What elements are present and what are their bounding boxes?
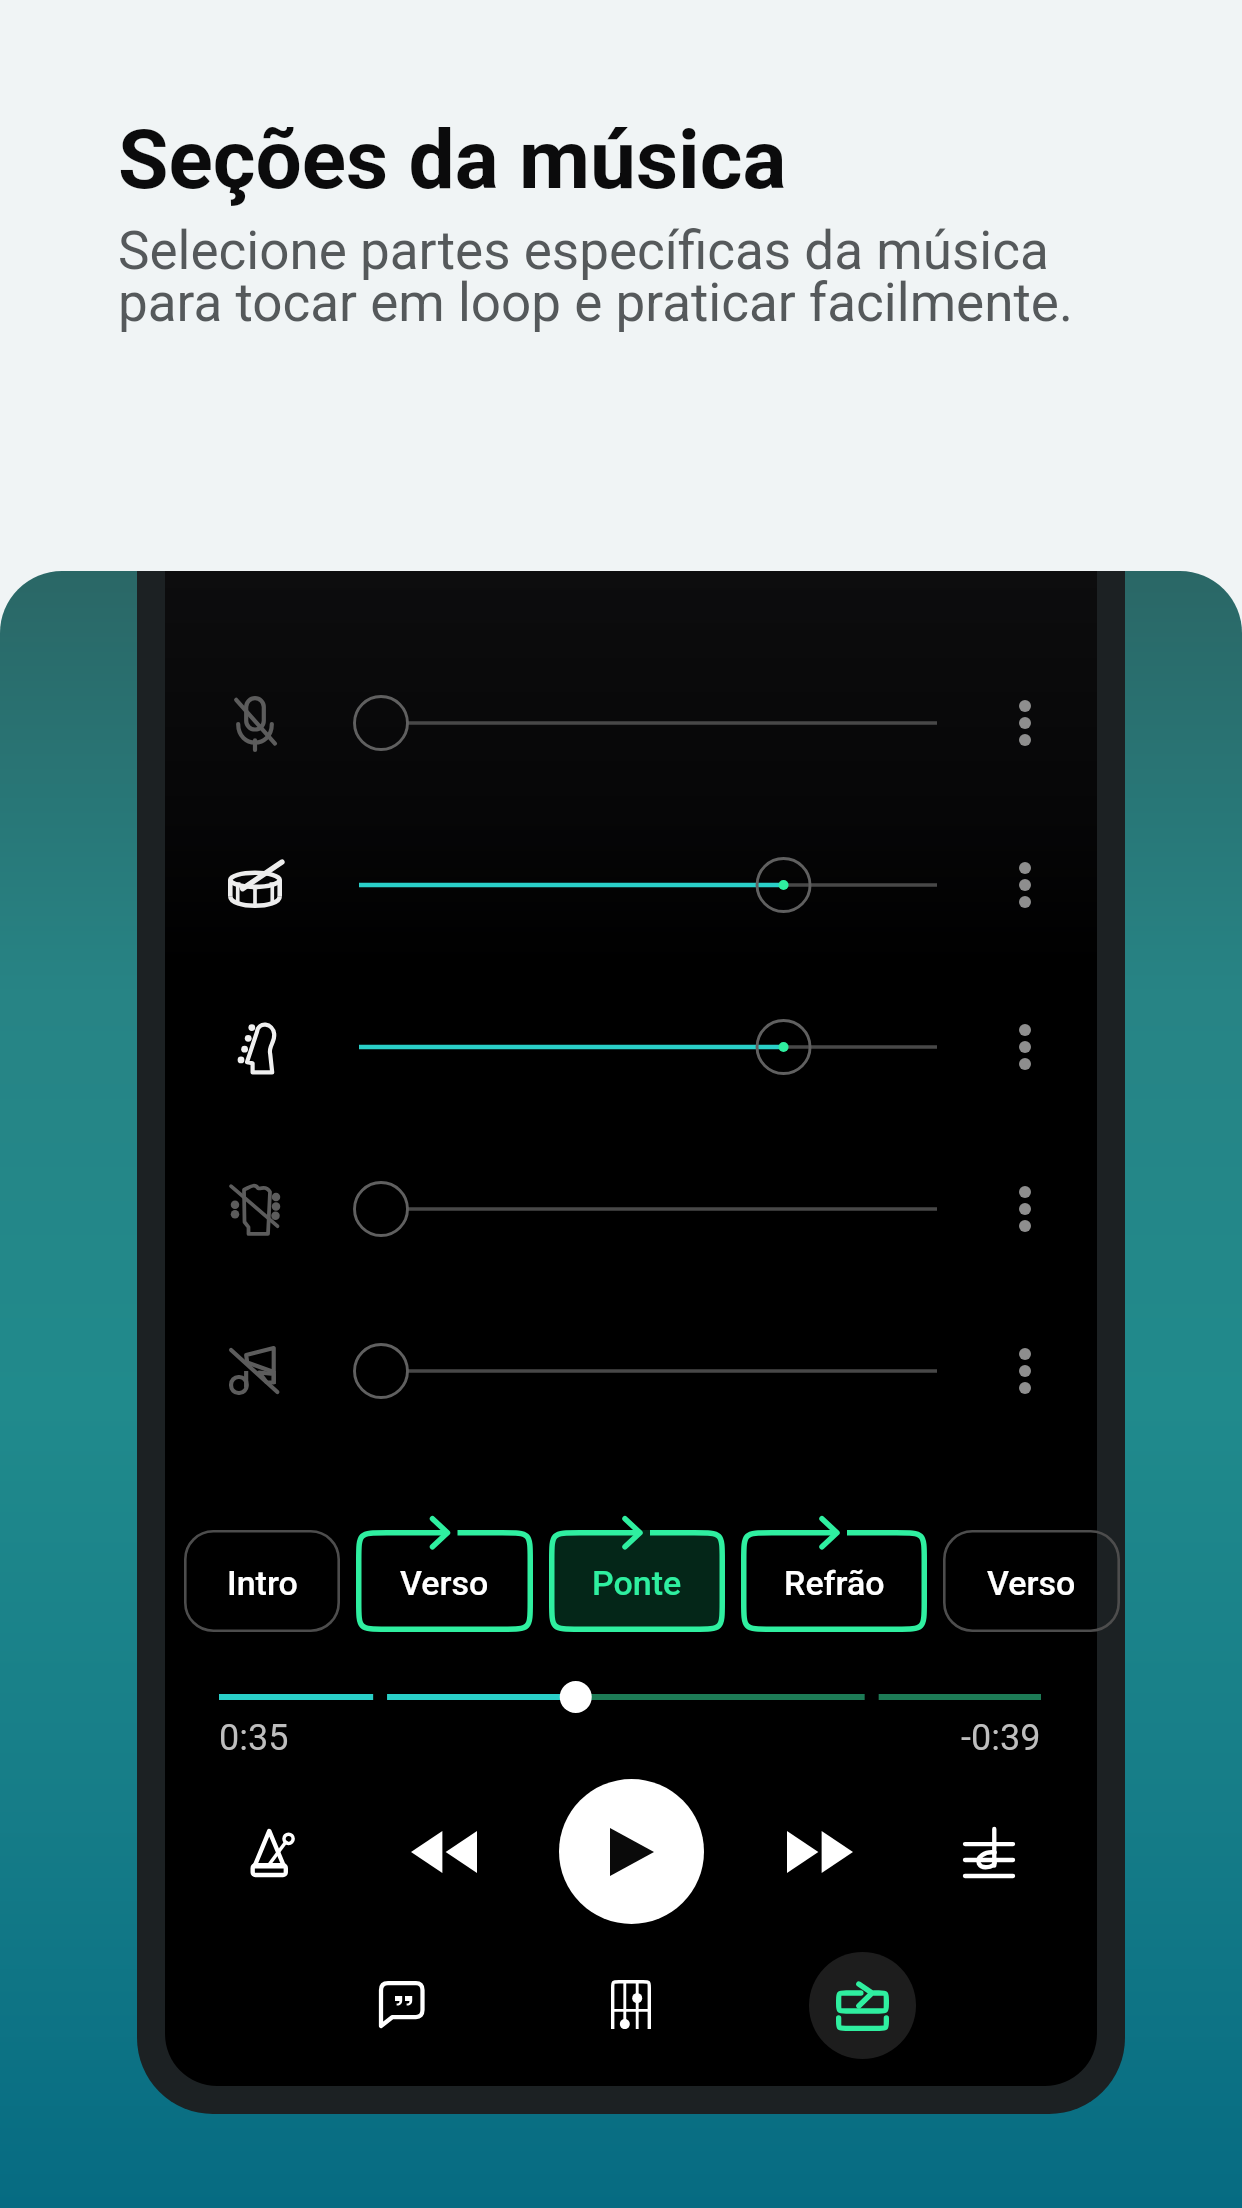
button[interactable]: Vocals	[201, 669, 309, 777]
button[interactable]: Bass	[201, 993, 309, 1101]
button[interactable]: More options	[985, 1326, 1065, 1416]
button[interactable]: Lyrics	[346, 1949, 456, 2059]
button[interactable]: More options	[985, 1164, 1065, 1254]
staticText: Verso	[987, 1563, 1076, 1603]
button[interactable]: Refrão	[741, 1512, 927, 1636]
staticText: Verso	[400, 1563, 489, 1603]
button[interactable]: Vocals volume	[330, 675, 970, 771]
button[interactable]: Drums volume	[330, 837, 970, 933]
button[interactable]: Notation	[934, 1797, 1044, 1907]
button[interactable]: Bass volume	[330, 999, 970, 1095]
button[interactable]: Metronome	[217, 1797, 327, 1907]
button[interactable]: Chords	[576, 1949, 686, 2059]
button[interactable]: Other volume	[330, 1323, 970, 1419]
button[interactable]: Drums	[201, 831, 309, 939]
button[interactable]: Rewind	[389, 1797, 499, 1907]
button[interactable]: Other	[201, 1317, 309, 1425]
button[interactable]: More options	[985, 840, 1065, 930]
staticText: Selecione partes específicas da música p…	[118, 220, 1073, 334]
staticText: Ponte	[592, 1563, 682, 1603]
button[interactable]: Intro	[184, 1512, 340, 1636]
button[interactable]: Ponte	[549, 1512, 725, 1636]
button[interactable]: Verso	[943, 1512, 1120, 1636]
button[interactable]: Fast forward	[765, 1797, 875, 1907]
staticText: Intro	[227, 1563, 298, 1603]
button[interactable]: Play	[559, 1779, 704, 1924]
staticText: Seções da música	[118, 112, 787, 208]
button[interactable]: More options	[985, 678, 1065, 768]
button[interactable]: Verso	[356, 1512, 533, 1636]
button[interactable]: More options	[985, 1002, 1065, 1092]
button[interactable]: Guitar volume	[330, 1161, 970, 1257]
button[interactable]: Guitar	[201, 1155, 309, 1263]
staticText: Refrão	[784, 1563, 885, 1603]
button[interactable]: Loop sections	[809, 1952, 916, 2059]
staticText: -0:39	[961, 1717, 1041, 1759]
staticText: 0:35	[219, 1717, 289, 1759]
